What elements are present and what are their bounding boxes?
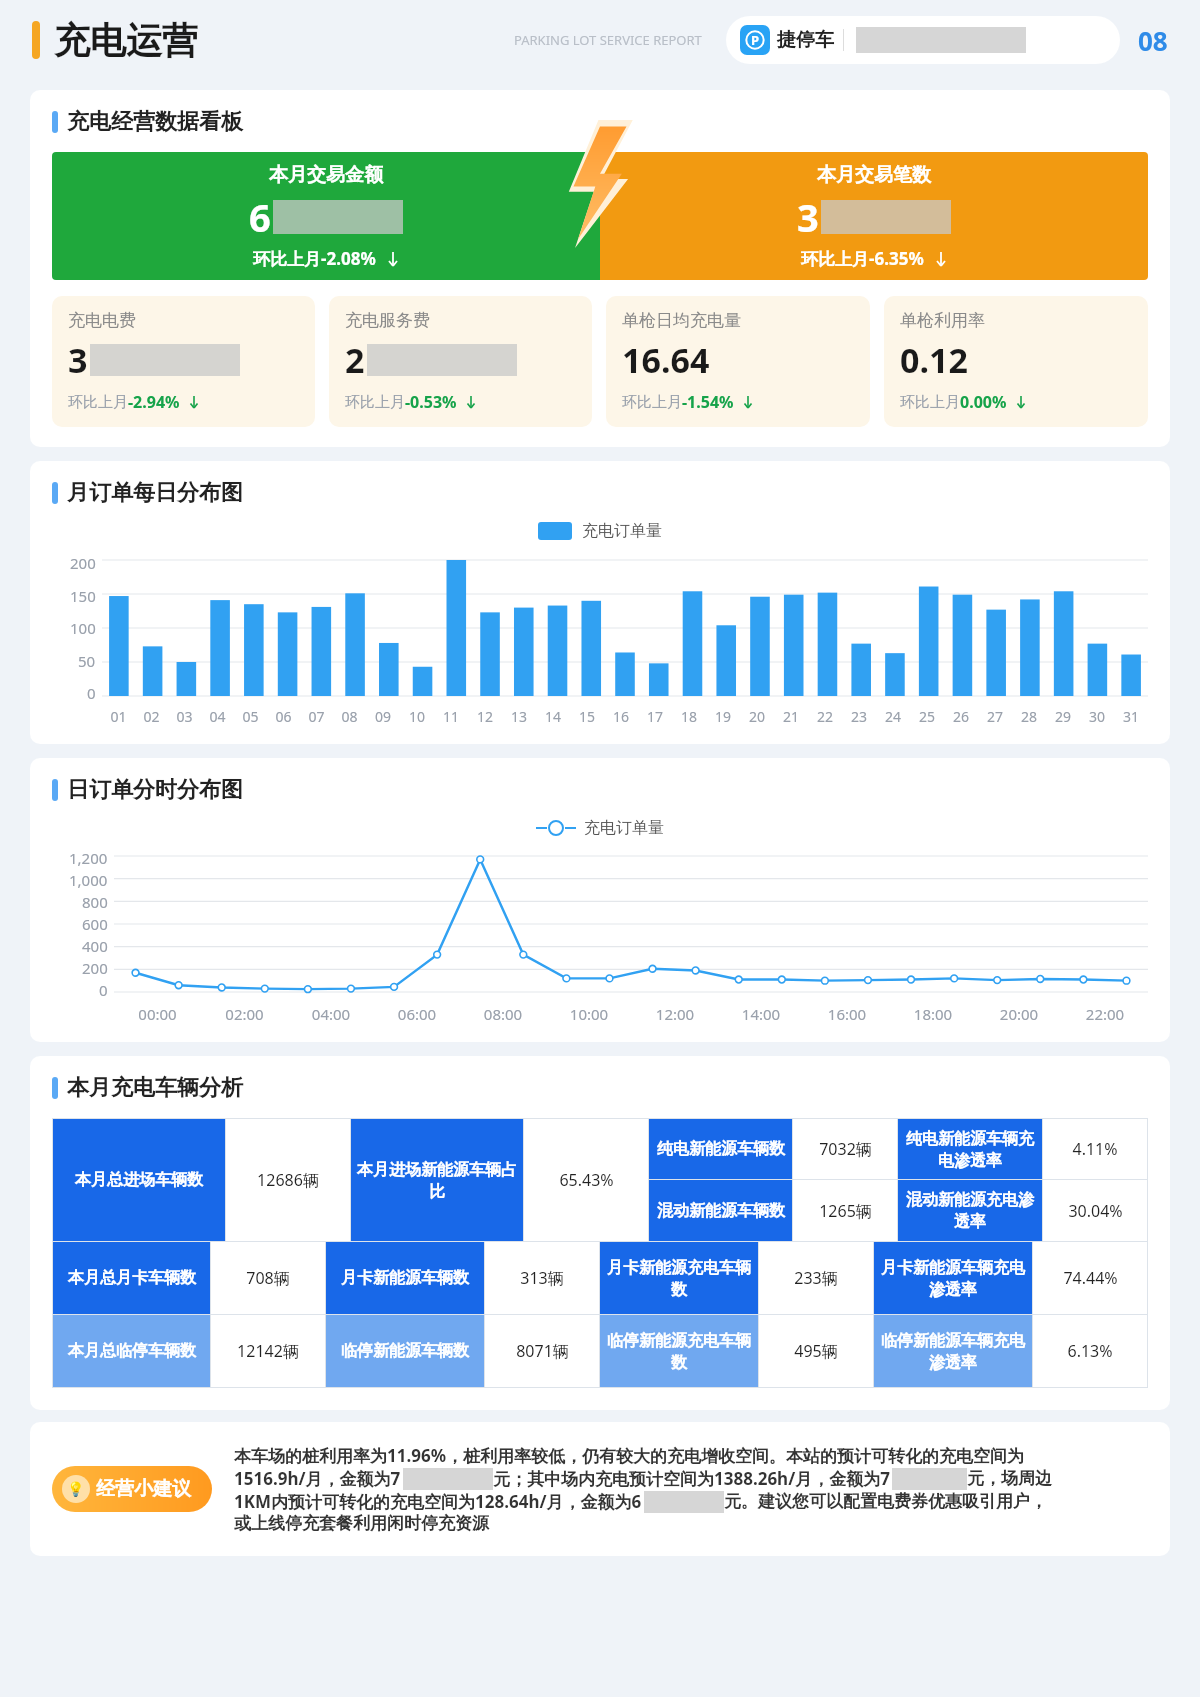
button[interactable]: 本月总进场车辆数 [53, 1119, 225, 1241]
staticText: 01 [102, 707, 135, 726]
other: Tips [62, 1475, 90, 1503]
staticText: 0.00% [960, 391, 1007, 413]
staticText: 05 [234, 707, 267, 726]
button[interactable]: 708辆 [211, 1242, 325, 1314]
button[interactable]: 本月总月卡车辆数 [53, 1242, 210, 1314]
staticText: 本车场的桩利用率为11.96%，桩利用率较低，仍有较大的充电增收空间。本站的预计… [234, 1444, 1025, 1467]
staticText: 捷停车 [777, 28, 834, 52]
button[interactable]: 74.44% [1033, 1242, 1147, 1314]
staticText: 25 [910, 707, 944, 726]
staticText: 02 [135, 707, 168, 726]
button[interactable]: 临停新能源充电车辆数 [600, 1315, 758, 1387]
button[interactable]: 本月总临停车辆数 [53, 1315, 210, 1387]
button[interactable]: 313辆 [485, 1242, 599, 1314]
staticText: 28 [1012, 707, 1046, 726]
button[interactable]: 混动新能源充电渗透率 [898, 1180, 1042, 1241]
button[interactable]: 纯电新能源车辆数 [649, 1119, 792, 1179]
staticText: 233辆 [794, 1267, 838, 1289]
staticText: 22 [808, 707, 842, 726]
button[interactable]: 30.04% [1043, 1180, 1147, 1241]
button[interactable]: 本月交易金额 [52, 152, 600, 280]
button[interactable]: 7032辆 [793, 1119, 897, 1179]
staticText: 环比上月 [622, 393, 682, 412]
staticText: 本月总进场车辆数 [75, 1170, 203, 1190]
staticText: 24 [876, 707, 910, 726]
staticText: 06:00 [374, 1004, 460, 1024]
button[interactable]: 本月进场新能源车辆占比 [351, 1119, 523, 1241]
button[interactable]: 单枪利用率 [884, 296, 1148, 427]
staticText: 充电服务费 [345, 310, 430, 331]
staticText: 6 [249, 191, 271, 243]
button[interactable]: 单枪日均充电量 [606, 296, 870, 427]
button[interactable]: 65.43% [524, 1119, 648, 1241]
staticText: 环比上月-2.08% [253, 247, 376, 270]
staticText: 16 [604, 707, 638, 726]
staticText: 100 [70, 618, 96, 638]
button[interactable]: 月卡新能源充电车辆数 [600, 1242, 758, 1314]
staticText: 单枪利用率 [900, 310, 985, 331]
staticText: 19 [706, 707, 740, 726]
button[interactable]: 1265辆 [793, 1180, 897, 1241]
staticText: 4.11% [1072, 1138, 1118, 1160]
staticText: 充电订单量 [582, 521, 662, 541]
button[interactable]: 月卡新能源车辆充电渗透率 [874, 1242, 1032, 1314]
staticText: 临停新能源车辆数 [341, 1341, 469, 1361]
staticText: 纯电新能源车辆数 [657, 1139, 785, 1159]
staticText: 09 [366, 707, 400, 726]
staticText: 本月总月卡车辆数 [68, 1268, 196, 1288]
staticText: 元；其中场内充电预计空间为1388.26h/月，金额为7 [493, 1467, 890, 1490]
button[interactable]: 临停新能源车辆数 [326, 1315, 484, 1387]
staticText: 03 [168, 707, 201, 726]
staticText: 临停新能源车辆充电渗透率 [879, 1331, 1027, 1372]
staticText: 18 [672, 707, 706, 726]
staticText: 10 [400, 707, 434, 726]
staticText: 495辆 [794, 1340, 838, 1362]
button[interactable]: 纯电新能源车辆充电渗透率 [898, 1119, 1042, 1179]
button[interactable]: 月卡新能源车辆数 [326, 1242, 484, 1314]
button[interactable]: 临停新能源车辆充电渗透率 [874, 1315, 1032, 1387]
staticText: 经营小建议 [96, 1477, 191, 1501]
staticText: 0.12 [900, 337, 968, 383]
button[interactable]: 充电电费 [52, 296, 315, 427]
button[interactable]: 495辆 [759, 1315, 873, 1387]
staticText: 04 [201, 707, 234, 726]
button[interactable]: 4.11% [1043, 1119, 1147, 1179]
button[interactable]: 233辆 [759, 1242, 873, 1314]
staticText: 14 [536, 707, 570, 726]
staticText: 313辆 [520, 1267, 564, 1289]
staticText: 💡 [67, 1481, 85, 1497]
staticText: 临停新能源充电车辆数 [605, 1331, 753, 1372]
button[interactable]: 12142辆 [211, 1315, 325, 1387]
staticText: 13 [502, 707, 536, 726]
staticText: 200 [82, 958, 108, 978]
staticText: 31 [1114, 707, 1148, 726]
staticText: 1KM内预计可转化的充电空间为128.64h/月，金额为6 [234, 1490, 642, 1513]
staticText: 1,200 [69, 848, 108, 868]
button[interactable]: 本月交易笔数 [600, 152, 1148, 280]
staticText: 元，场周边 [967, 1468, 1052, 1489]
button[interactable]: 混动新能源车辆数 [649, 1180, 792, 1241]
button[interactable]: Parking logo [726, 16, 1120, 64]
button[interactable]: 6.13% [1033, 1315, 1147, 1387]
staticText: 元。建议您可以配置电费券优惠吸引用户， [724, 1491, 1047, 1512]
staticText: 单枪日均充电量 [622, 310, 741, 331]
staticText: 400 [82, 936, 108, 956]
staticText: 02:00 [201, 1004, 288, 1024]
staticText: 3 [68, 337, 88, 383]
staticText: 16:00 [804, 1004, 890, 1024]
staticText: 3 [797, 191, 819, 243]
staticText: 50 [78, 651, 96, 671]
staticText: 本月总临停车辆数 [68, 1341, 196, 1361]
button[interactable]: 8071辆 [485, 1315, 599, 1387]
staticText: 29 [1046, 707, 1080, 726]
staticText: PARKING LOT SERVICE REPORT [514, 31, 702, 49]
staticText: 本月交易笔数 [817, 163, 931, 187]
button[interactable]: Tips [52, 1466, 212, 1512]
staticText: 12:00 [632, 1004, 718, 1024]
staticText: 1265辆 [819, 1200, 872, 1222]
button[interactable]: 12686辆 [226, 1119, 350, 1241]
staticText: 2 [345, 337, 365, 383]
staticText: 18:00 [890, 1004, 976, 1024]
button[interactable]: 充电服务费 [329, 296, 592, 427]
staticText: 环比上月 [900, 393, 960, 412]
